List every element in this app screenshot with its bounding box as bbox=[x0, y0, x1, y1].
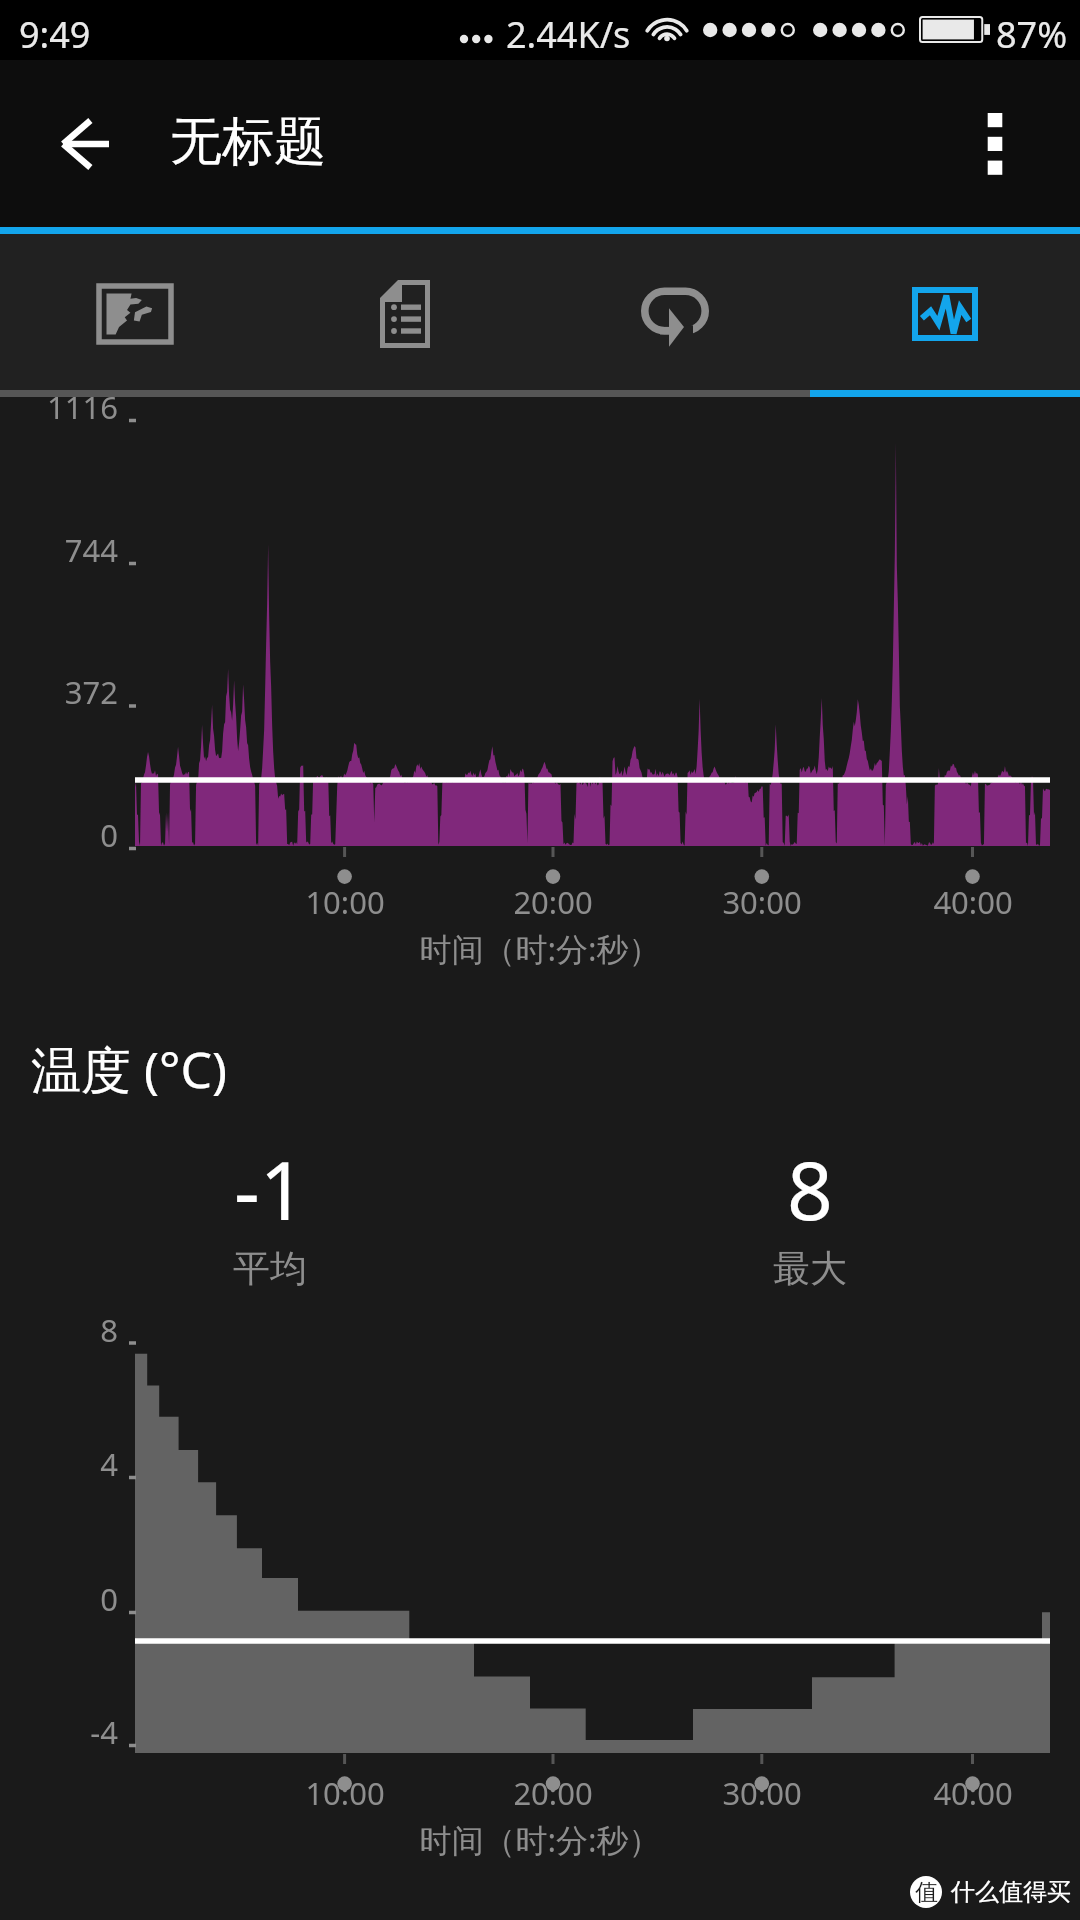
staticText: 30:00 bbox=[662, 881, 862, 923]
staticText: 1116 bbox=[0, 386, 118, 428]
button[interactable]: Laps bbox=[540, 234, 810, 306]
staticText: 什么值得买 bbox=[951, 1877, 1071, 1907]
staticText: 4 bbox=[0, 1443, 118, 1485]
staticText: 9:49 bbox=[19, 10, 91, 59]
staticText: 时间（时:分:秒） bbox=[0, 927, 1080, 971]
staticText: 40:00 bbox=[873, 1772, 1073, 1814]
staticText: 8 bbox=[787, 1134, 833, 1243]
staticText: 时间（时:分:秒） bbox=[0, 1818, 1080, 1862]
button[interactable]: Details bbox=[270, 234, 540, 306]
button[interactable]: More options bbox=[945, 94, 1045, 194]
staticText: 744 bbox=[0, 529, 118, 571]
staticText: 20:00 bbox=[453, 881, 653, 923]
staticText: 温度 (°C) bbox=[31, 1035, 227, 1103]
button[interactable]: Charts bbox=[810, 234, 1080, 306]
button[interactable]: Back bbox=[34, 94, 134, 194]
staticText: 0 bbox=[0, 814, 118, 856]
staticText: 0 bbox=[0, 1578, 118, 1620]
staticText: 30:00 bbox=[662, 1772, 862, 1814]
staticText: 87% bbox=[996, 10, 1068, 59]
staticText: 10:00 bbox=[245, 1772, 445, 1814]
staticText: 值 bbox=[915, 1878, 938, 1907]
staticText: 无标题 bbox=[170, 109, 326, 175]
staticText: 20:00 bbox=[453, 1772, 653, 1814]
staticText: 平均 bbox=[233, 1245, 307, 1292]
staticText: 372 bbox=[0, 671, 118, 713]
staticText: 8 bbox=[0, 1309, 118, 1351]
staticText: -4 bbox=[0, 1711, 118, 1753]
button[interactable]: Map bbox=[0, 234, 270, 306]
staticText: 最大 bbox=[773, 1245, 847, 1292]
staticText: 10:00 bbox=[245, 881, 445, 923]
staticText: 40:00 bbox=[873, 881, 1073, 923]
staticText: 2.44K/s bbox=[506, 10, 631, 59]
staticText: -1 bbox=[234, 1134, 306, 1243]
